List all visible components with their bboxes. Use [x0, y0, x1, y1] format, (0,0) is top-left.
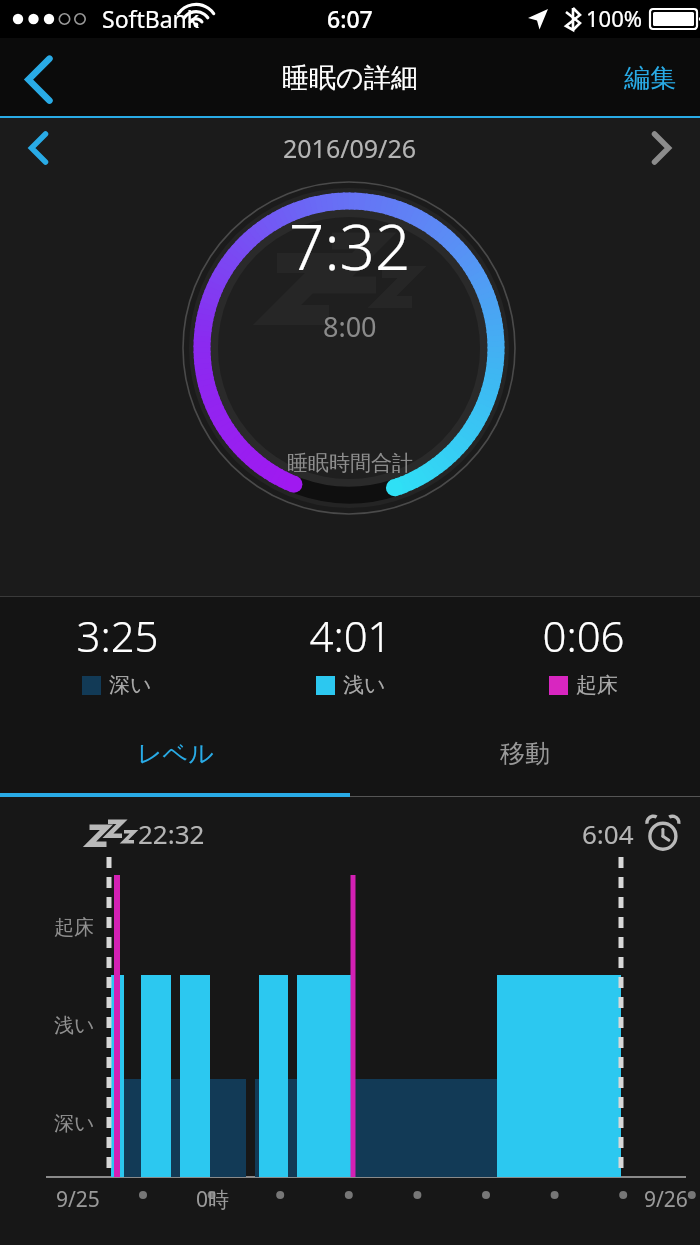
staticText: 深い: [54, 1111, 95, 1136]
staticText: 9/25: [56, 1185, 100, 1214]
button[interactable]: 0:06: [467, 597, 700, 709]
staticText: 100%: [586, 3, 643, 33]
staticText: 0時: [196, 1185, 230, 1214]
button[interactable]: Back: [0, 38, 74, 118]
staticText: 編集: [624, 62, 676, 95]
button[interactable]: Next day: [630, 120, 700, 176]
staticText: 8:00: [323, 308, 377, 345]
button[interactable]: 3:25: [0, 597, 234, 709]
staticText: 睡眠の詳細: [282, 61, 418, 95]
staticText: レベル: [137, 738, 214, 769]
staticText: 22:32: [138, 816, 205, 851]
staticText: 3:25: [76, 607, 159, 664]
staticText: 6:04: [582, 816, 634, 851]
button[interactable]: 移動: [350, 709, 700, 797]
staticText: 移動: [500, 738, 550, 769]
button[interactable]: レベル: [0, 709, 350, 797]
staticText: 深い: [109, 672, 152, 698]
staticText: 0:06: [542, 607, 625, 664]
staticText: 6:07: [327, 3, 373, 34]
staticText: 浅い: [343, 672, 386, 698]
button[interactable]: 編集: [618, 52, 682, 105]
staticText: 起床: [576, 672, 618, 698]
button[interactable]: Previous day: [0, 120, 70, 176]
staticText: 浅い: [54, 1013, 95, 1038]
staticText: 7:32: [289, 204, 411, 288]
staticText: 4:01: [309, 607, 392, 664]
staticText: 起床: [54, 915, 94, 940]
button[interactable]: 4:01: [234, 597, 467, 709]
staticText: SoftBank: [102, 3, 200, 34]
staticText: 睡眠時間合計: [287, 450, 413, 476]
staticText: 9/26: [644, 1185, 688, 1214]
staticText: 2016/09/26: [283, 131, 417, 165]
